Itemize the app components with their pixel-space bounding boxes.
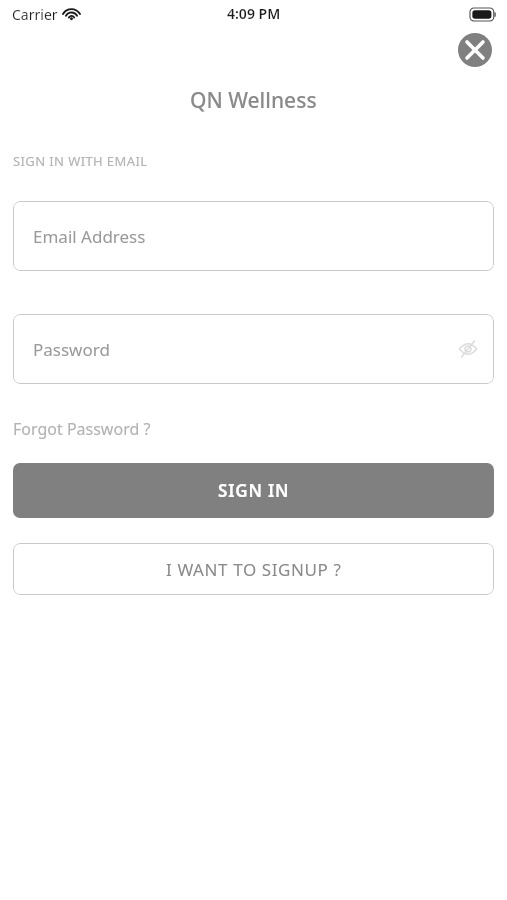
staticText: QN Wellness <box>190 86 317 115</box>
staticText: Password <box>33 338 110 361</box>
button[interactable]: Close <box>458 33 492 67</box>
staticText: I WANT TO SIGNUP ? <box>166 558 342 581</box>
button[interactable]: Forgot Password ? <box>13 416 151 442</box>
button[interactable]: I WANT TO SIGNUP ? <box>13 543 494 595</box>
staticText: 4:09 PM <box>227 4 281 23</box>
staticText: Forgot Password ? <box>13 418 151 440</box>
staticText: SIGN IN WITH EMAIL <box>13 152 148 170</box>
button[interactable]: SIGN IN <box>13 463 494 518</box>
staticText: Email Address <box>33 225 146 248</box>
button[interactable]: Email Address <box>13 201 494 271</box>
staticText: SIGN IN <box>218 479 290 502</box>
button[interactable]: Password <box>13 314 494 384</box>
button[interactable]: Show password <box>451 332 485 366</box>
staticText: Carrier <box>12 5 58 24</box>
